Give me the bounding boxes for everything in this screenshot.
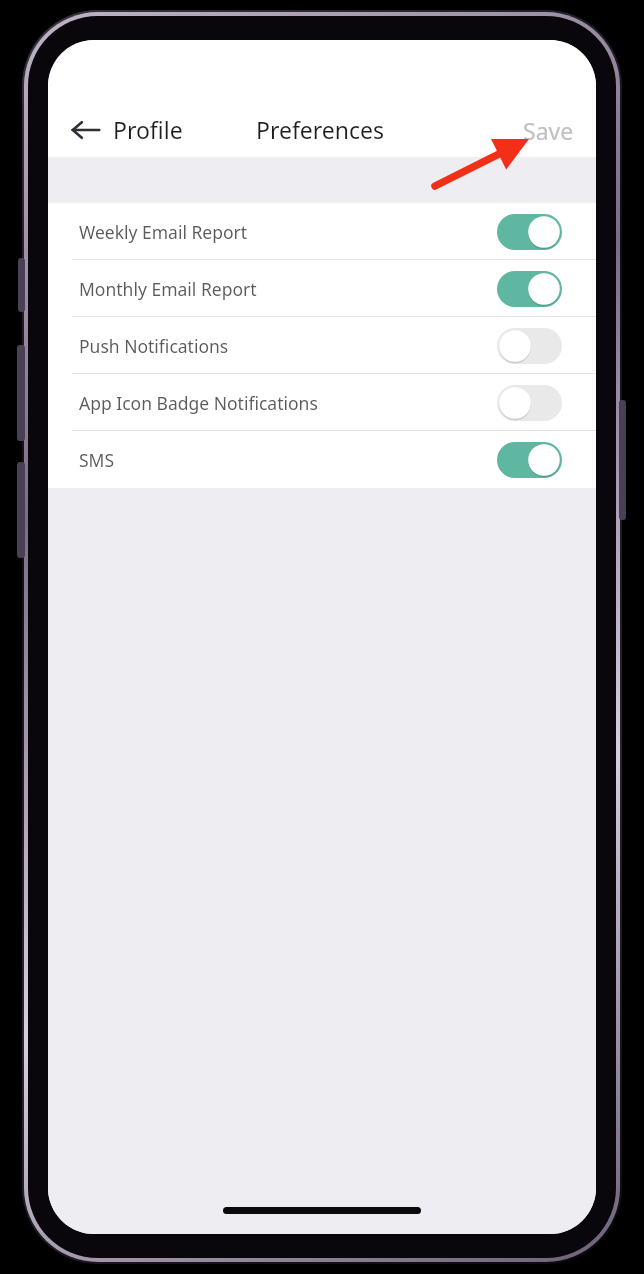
- button[interactable]: Profile: [113, 114, 183, 145]
- button[interactable]: On: [497, 271, 562, 307]
- staticText: Save: [523, 115, 574, 146]
- button[interactable]: App Icon Badge Notifications: [48, 374, 596, 431]
- staticText: Monthly Email Report: [79, 277, 257, 301]
- staticText: Push Notifications: [79, 334, 229, 358]
- button[interactable]: Back: [58, 102, 114, 158]
- button[interactable]: Off: [497, 385, 562, 421]
- button[interactable]: On: [497, 442, 562, 478]
- staticText: App Icon Badge Notifications: [79, 391, 318, 415]
- button[interactable]: SMS: [48, 431, 596, 488]
- button[interactable]: Monthly Email Report: [48, 260, 596, 317]
- button[interactable]: On: [497, 214, 562, 250]
- staticText: Preferences: [256, 114, 385, 145]
- staticText: SMS: [79, 448, 115, 472]
- button[interactable]: Save: [500, 102, 596, 158]
- staticText: Weekly Email Report: [79, 220, 248, 244]
- button[interactable]: Off: [497, 328, 562, 364]
- button[interactable]: Weekly Email Report: [48, 203, 596, 260]
- button[interactable]: Push Notifications: [48, 317, 596, 374]
